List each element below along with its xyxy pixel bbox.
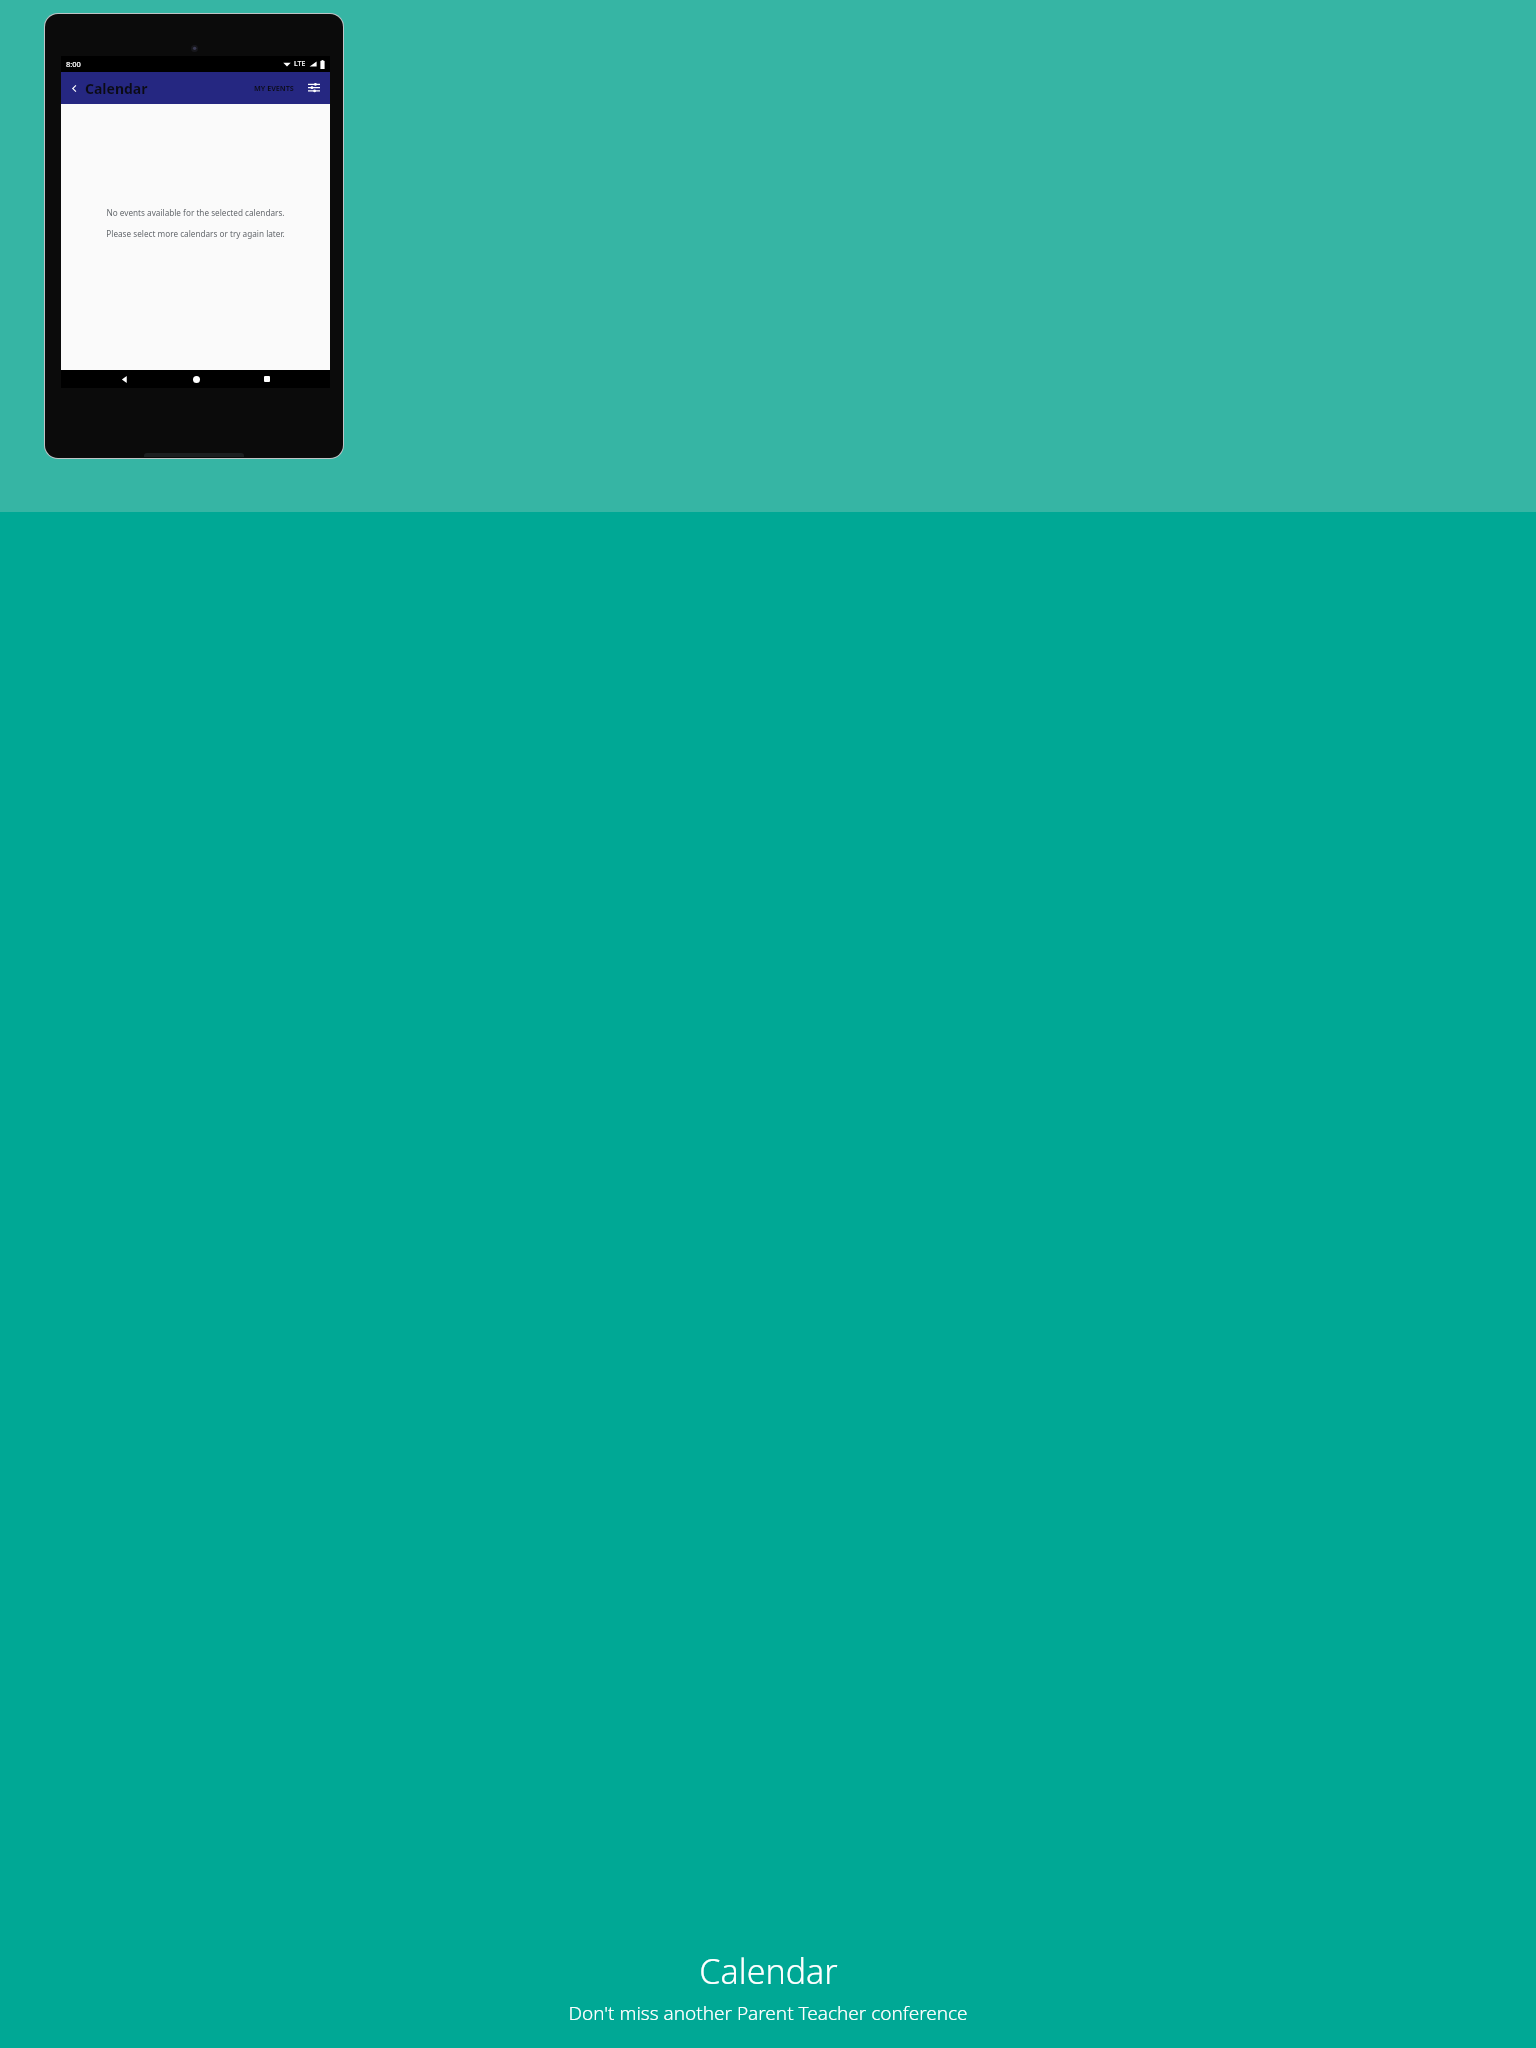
staticText: Calendar <box>699 1948 838 1994</box>
staticText: Don't miss another Parent Teacher confer… <box>568 2000 968 2026</box>
button[interactable]: Back <box>65 79 83 97</box>
button[interactable]: Home <box>187 370 205 388</box>
staticText: Please select more calendars or try agai… <box>106 228 285 239</box>
button[interactable]: Recents <box>258 370 276 388</box>
button[interactable]: MY EVENTS <box>252 79 296 97</box>
button[interactable]: Calendar <box>85 79 148 98</box>
staticText: 8:00 <box>66 59 81 69</box>
staticText: MY EVENTS <box>254 83 294 93</box>
button[interactable]: Back <box>115 370 133 388</box>
staticText: LTE <box>294 59 306 69</box>
staticText: No events available for the selected cal… <box>106 207 285 218</box>
button[interactable]: Filter calendars <box>305 79 323 97</box>
